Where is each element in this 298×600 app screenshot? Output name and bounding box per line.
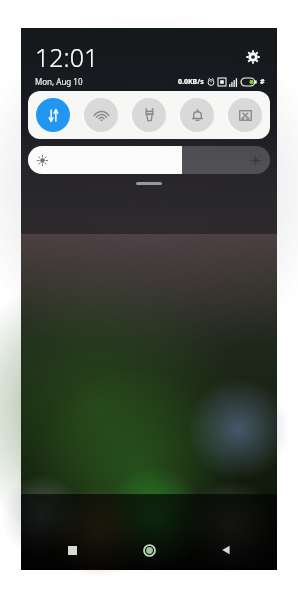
button[interactable]: Mobile data (36, 98, 70, 132)
button[interactable]: Screenshot (228, 98, 262, 132)
staticText: 0.0KB/s (178, 77, 204, 87)
button[interactable]: Settings (241, 45, 265, 69)
staticText: Mon, Aug 10 (35, 76, 83, 87)
button[interactable] (28, 146, 270, 174)
button[interactable]: Recents (59, 537, 85, 563)
button[interactable]: Back (213, 537, 239, 563)
button[interactable]: Expand quick settings (136, 182, 162, 185)
button[interactable]: Do not disturb (180, 98, 214, 132)
staticText: 12:01 (35, 40, 99, 74)
button[interactable]: Flashlight (132, 98, 166, 132)
staticText: # (260, 77, 265, 87)
button[interactable]: Home (136, 537, 162, 563)
button[interactable]: Wi-Fi (84, 98, 118, 132)
